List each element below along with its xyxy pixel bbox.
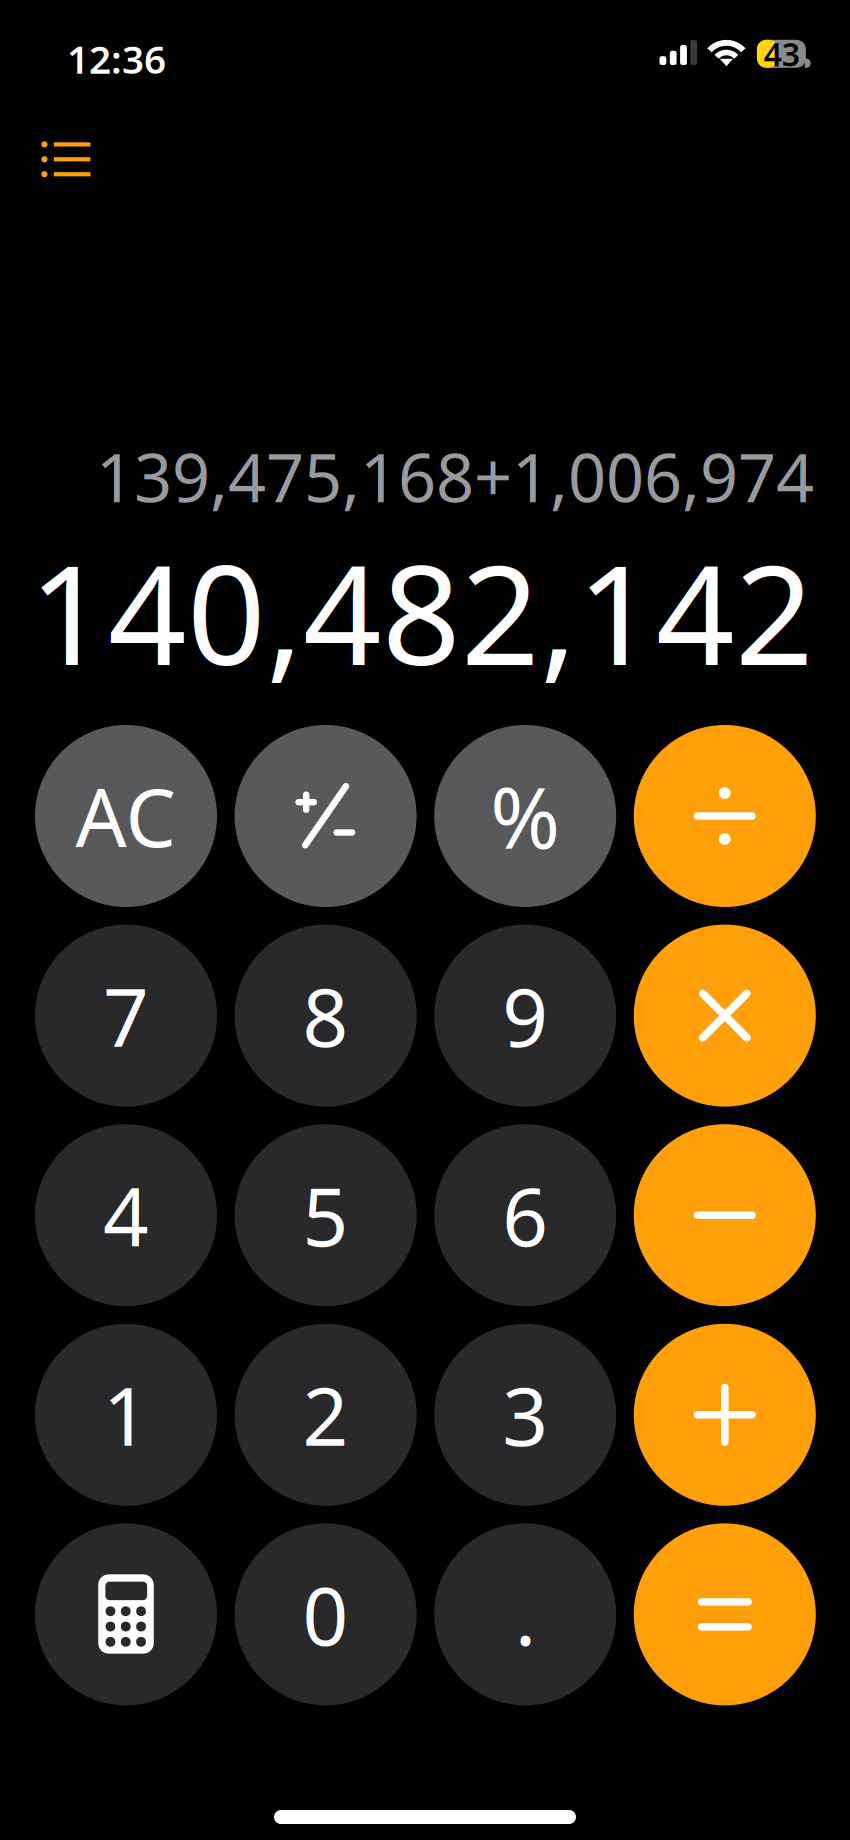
button[interactable]: % xyxy=(434,725,616,907)
staticText: 4 xyxy=(103,1162,149,1268)
button[interactable]: AC xyxy=(35,725,217,907)
button[interactable]: 2 xyxy=(235,1324,417,1506)
staticText: 139,475,168+1,006,974 xyxy=(96,432,814,520)
staticText: 43 xyxy=(764,33,800,75)
staticText: 6 xyxy=(502,1162,548,1268)
button[interactable]: Plus xyxy=(634,1324,816,1506)
button[interactable]: History xyxy=(29,129,102,186)
staticText: 5 xyxy=(303,1162,349,1268)
staticText: 7 xyxy=(103,962,149,1069)
staticText: 1 xyxy=(103,1362,149,1468)
button[interactable]: 0 xyxy=(235,1523,417,1705)
button[interactable]: 7 xyxy=(35,925,217,1107)
staticText: 2 xyxy=(303,1362,349,1468)
staticText: 12:36 xyxy=(67,33,166,84)
button[interactable]: Plus Minus xyxy=(235,725,417,907)
staticText: 8 xyxy=(303,962,349,1069)
button[interactable]: Minus xyxy=(634,1124,816,1306)
button[interactable]: 3 xyxy=(434,1324,616,1506)
button[interactable]: . xyxy=(434,1523,616,1705)
button[interactable]: Equals xyxy=(634,1523,816,1705)
button[interactable]: Calculator xyxy=(35,1523,217,1705)
staticText: 9 xyxy=(502,962,548,1069)
button[interactable]: 5 xyxy=(235,1124,417,1306)
button[interactable]: Multiply xyxy=(634,925,816,1107)
button[interactable]: 8 xyxy=(235,925,417,1107)
staticText: . xyxy=(515,1561,536,1667)
staticText: % xyxy=(490,760,560,872)
button[interactable]: Divide xyxy=(634,725,816,907)
staticText: 0 xyxy=(303,1561,349,1667)
button[interactable]: 6 xyxy=(434,1124,616,1306)
button[interactable]: 1 xyxy=(35,1324,217,1506)
staticText: AC xyxy=(75,763,176,869)
staticText: 140,482,142 xyxy=(29,520,814,703)
staticText: 3 xyxy=(502,1362,548,1468)
button[interactable]: 4 xyxy=(35,1124,217,1306)
button[interactable]: 9 xyxy=(434,925,616,1107)
